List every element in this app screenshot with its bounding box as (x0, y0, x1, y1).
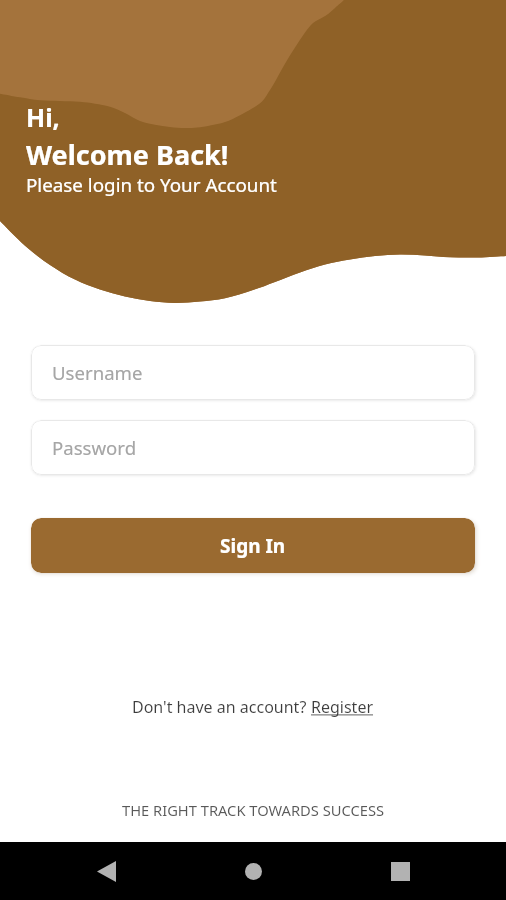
staticText: Password (52, 435, 137, 460)
staticText: Please login to Your Account (26, 172, 277, 198)
staticText: Hi, (26, 100, 60, 134)
button[interactable]: Home (231, 849, 275, 893)
button[interactable]: Recent apps (378, 849, 422, 893)
button[interactable]: Password (31, 420, 475, 475)
staticText: Don't have an account? (132, 696, 311, 718)
button[interactable]: Username (31, 345, 475, 400)
button[interactable]: Register (311, 696, 374, 718)
button[interactable]: Sign In (31, 518, 475, 573)
staticText: Sign In (220, 533, 286, 559)
staticText: Welcome Back! (26, 136, 229, 173)
staticText: Username (52, 360, 143, 385)
button[interactable]: Back (84, 849, 128, 893)
staticText: THE RIGHT TRACK TOWARDS SUCCESS (122, 800, 385, 820)
staticText: Register (311, 696, 374, 718)
